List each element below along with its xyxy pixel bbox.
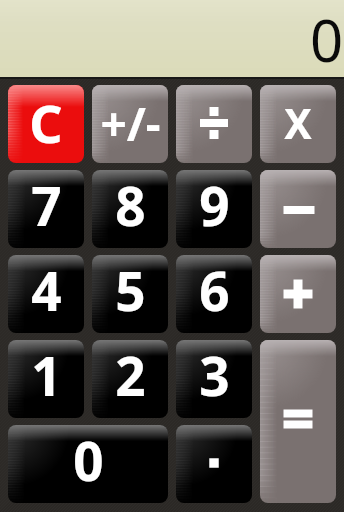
button[interactable]: Multiply [260, 85, 336, 163]
staticText: 3 [199, 340, 230, 411]
button[interactable]: 0 [8, 425, 168, 503]
button[interactable]: Decimal point [176, 425, 252, 503]
button[interactable]: 1 [8, 340, 84, 418]
button[interactable]: 2 [92, 340, 168, 418]
staticText: 1 [31, 340, 62, 411]
button[interactable]: 3 [176, 340, 252, 418]
staticText: X [284, 95, 312, 151]
button[interactable]: 7 [8, 170, 84, 248]
button[interactable]: Divide [176, 85, 252, 163]
button[interactable]: 6 [176, 255, 252, 333]
button[interactable]: Minus [260, 170, 336, 248]
staticText: 2 [115, 340, 146, 411]
button[interactable]: 5 [92, 255, 168, 333]
staticText: 4 [31, 255, 62, 326]
staticText: 9 [199, 170, 230, 241]
button[interactable]: Plus [260, 255, 336, 333]
staticText: 0 [73, 425, 104, 496]
button[interactable]: Plus minus [92, 85, 168, 163]
button[interactable]: Equals [260, 340, 336, 503]
staticText: 6 [199, 255, 230, 326]
button[interactable]: Clear [8, 85, 84, 163]
staticText: 8 [115, 170, 146, 241]
staticText: +/- [100, 92, 161, 155]
staticText: 0 [310, 0, 344, 77]
button[interactable]: 4 [8, 255, 84, 333]
staticText: C [29, 87, 63, 158]
staticText: 5 [115, 255, 146, 326]
button[interactable]: 9 [176, 170, 252, 248]
button[interactable]: 8 [92, 170, 168, 248]
staticText: 7 [31, 170, 62, 241]
